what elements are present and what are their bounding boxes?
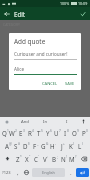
staticText: L [78,142,82,150]
staticText: English [42,170,55,175]
button[interactable]: Shift [0,152,14,165]
button[interactable]: W [9,126,17,139]
button[interactable]: O [71,126,80,139]
staticText: W [9,129,15,137]
staticText: CATEGORY [3,22,20,27]
staticText: D [23,142,28,150]
staticText: R [28,129,32,137]
staticText: $ [28,142,30,146]
staticText: F [33,142,37,150]
button[interactable]: B [50,152,59,165]
button[interactable]: S [13,139,22,152]
button[interactable]: Space [32,168,65,177]
button[interactable]: K [67,139,76,152]
staticText: C [34,155,38,163]
staticText: 8 [67,129,69,133]
staticText: & [46,142,49,146]
button[interactable]: N [59,152,68,165]
button[interactable]: Backspace [77,152,90,165]
button[interactable]: Y [44,126,53,139]
button[interactable]: CANCEL [40,79,60,88]
staticText: 9 [77,129,79,133]
staticText: N [61,155,66,163]
button[interactable]: D [22,139,31,152]
button[interactable]: Period [66,166,75,179]
staticText: A [5,142,9,150]
staticText: M [69,155,75,163]
button[interactable]: R [26,126,35,139]
button[interactable]: ?123 [0,166,13,179]
button[interactable]: J [58,139,67,152]
staticText: O [72,129,77,137]
staticText: 10:09 [78,1,88,6]
button[interactable]: I [56,117,77,126]
button[interactable]: M [68,152,77,165]
staticText: ) [82,142,83,146]
staticText: + [63,142,65,146]
button[interactable]: Save [78,9,88,19]
button[interactable]: E [17,126,26,139]
staticText: J [61,142,63,150]
button[interactable]: Z [14,152,23,165]
staticText: 4 [32,129,34,133]
button[interactable]: Back [2,9,12,19]
staticText: X [25,155,29,163]
staticText: " [29,155,31,159]
button[interactable]: Comma [13,166,22,179]
staticText: ( [73,142,74,146]
button[interactable]: Voice input [77,117,90,126]
staticText: 2 [15,129,17,133]
button[interactable]: L [76,139,85,152]
staticText: Add quote [14,37,46,46]
staticText: V [43,155,47,163]
button[interactable]: H [49,139,58,152]
button[interactable]: SAVE [63,79,77,88]
button[interactable]: I [62,126,71,139]
staticText: B [52,155,57,163]
staticText: ? [75,155,77,159]
button[interactable]: G [40,139,49,152]
staticText: Z [16,155,20,163]
staticText: . [70,169,72,177]
staticText: SAVE [65,81,75,86]
button[interactable]: U [53,126,62,139]
staticText: G [41,142,46,150]
button[interactable]: Enter [76,168,89,177]
staticText: P [82,129,86,137]
staticText: 0 [86,129,88,133]
staticText: K [69,142,73,150]
staticText: * [20,155,22,159]
button[interactable]: Change language [22,166,31,179]
button[interactable]: C [32,152,41,165]
staticText: 7 [59,129,61,133]
staticText: Alice [14,66,25,72]
staticText: In [43,119,48,125]
staticText: ?123 [2,170,11,175]
staticText: 6 [50,129,52,133]
button[interactable]: V [41,152,50,165]
button[interactable]: Clipboard [0,117,14,126]
staticText: I [66,119,68,125]
button[interactable]: P [80,126,89,139]
button[interactable]: A [4,139,13,152]
button[interactable]: F [31,139,40,152]
button[interactable]: X [23,152,32,165]
staticText: ; [57,155,58,159]
staticText: Edit [14,10,26,18]
staticText: @ [9,142,12,146]
button[interactable]: Q [1,126,9,139]
staticText: - [55,142,57,146]
staticText: 100% [60,1,70,6]
staticText: ! [66,155,67,159]
staticText: H [50,142,55,150]
button[interactable]: T [35,126,44,139]
staticText: S [14,142,18,150]
staticText: Y [46,129,50,137]
staticText: # [18,142,21,146]
staticText: And [21,119,29,125]
button[interactable]: In [35,117,56,126]
staticText: , [17,169,19,177]
button[interactable]: And [14,117,35,126]
staticText: T [37,129,41,137]
staticText: Curiouser and curiouser! [14,51,68,57]
